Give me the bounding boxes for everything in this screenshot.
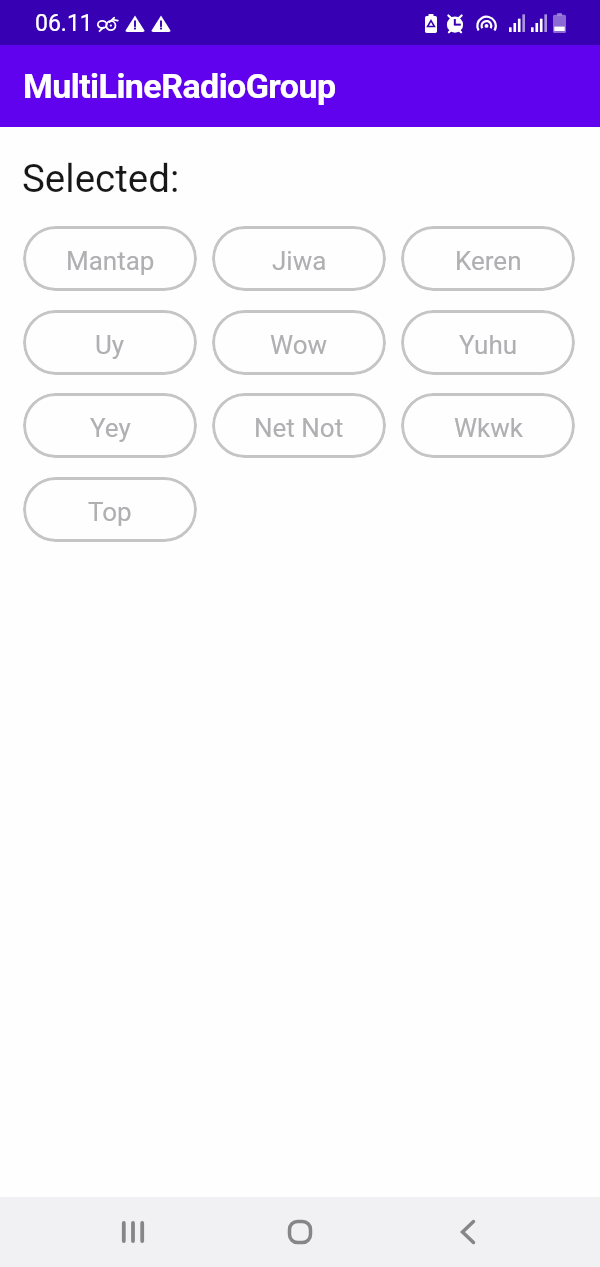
button[interactable]: Home [240,1197,360,1267]
staticText: Selected: [22,156,180,201]
button[interactable]: Yuhu [401,310,575,375]
button[interactable]: Mantap [23,226,197,291]
button[interactable]: Recent apps [73,1197,193,1267]
staticText: 06.11 [35,10,93,37]
staticText: Yuhu [459,330,518,360]
staticText: Keren [455,246,522,276]
staticText: Yey [90,413,131,443]
button[interactable]: Top [23,477,197,542]
staticText: MultiLineRadioGroup [23,66,336,106]
staticText: Net Not [254,413,344,443]
button[interactable]: Back [408,1197,528,1267]
button[interactable]: Wkwk [401,393,575,458]
staticText: Uy [95,330,125,360]
button[interactable]: Yey [23,393,197,458]
staticText: Top [88,497,132,527]
button[interactable]: Keren [401,226,575,291]
button[interactable]: Net Not [212,393,386,458]
staticText: Jiwa [272,246,327,276]
button[interactable]: Uy [23,310,197,375]
staticText: Wow [270,330,328,360]
button[interactable]: Wow [212,310,386,375]
staticText: Mantap [66,246,155,276]
staticText: Wkwk [454,413,523,443]
button[interactable]: Jiwa [212,226,386,291]
